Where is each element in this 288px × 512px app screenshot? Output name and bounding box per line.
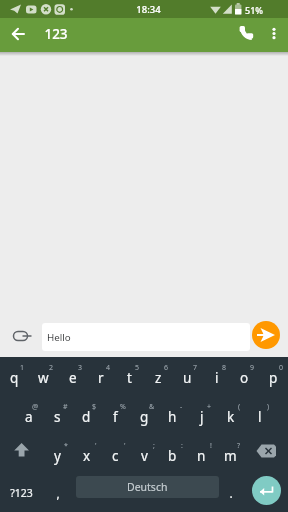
staticText: + (207, 402, 212, 412)
staticText: h (168, 408, 177, 426)
button[interactable]: o (230, 357, 259, 396)
button[interactable]: g (130, 396, 159, 435)
button[interactable]: h (158, 396, 187, 435)
staticText: u (183, 369, 192, 387)
staticText: 51% (245, 4, 263, 16)
staticText: 3 (78, 363, 83, 373)
staticText: @ (32, 402, 39, 412)
button[interactable]: Deutsch (76, 476, 219, 498)
staticText: Hello (47, 331, 71, 344)
button[interactable]: b (158, 435, 187, 474)
staticText: ) (267, 402, 270, 412)
button[interactable]: k (216, 396, 245, 435)
button[interactable] (6, 322, 36, 350)
staticText: d (82, 408, 91, 426)
staticText: z (155, 369, 162, 387)
staticText: v (141, 447, 148, 465)
staticText: 2 (49, 363, 54, 373)
staticText: o (240, 369, 249, 387)
button[interactable]: i (202, 357, 231, 396)
staticText: # (63, 402, 68, 412)
button[interactable]: e (58, 357, 87, 396)
button[interactable]: q (0, 357, 29, 396)
button[interactable]: . (216, 473, 245, 512)
staticText: q (10, 369, 19, 387)
staticText: k (227, 408, 235, 426)
staticText: ( (238, 402, 241, 412)
button[interactable] (252, 321, 280, 349)
staticText: $ (92, 402, 97, 412)
staticText: a (25, 408, 33, 426)
staticText: 123 (44, 25, 68, 43)
staticText: * (64, 441, 68, 451)
staticText: ' (95, 441, 97, 451)
button[interactable]: r (86, 357, 115, 396)
staticText: - (180, 402, 183, 412)
button[interactable]: v (130, 435, 159, 474)
staticText: e (69, 369, 77, 387)
staticText: ? (237, 441, 241, 451)
staticText: x (83, 447, 91, 465)
button[interactable]: z (144, 357, 173, 396)
staticText: 9 (250, 363, 255, 373)
button[interactable]: p (259, 357, 288, 396)
button[interactable]: ?123 (0, 473, 43, 512)
button[interactable]: d (72, 396, 101, 435)
staticText: ?123 (10, 486, 33, 500)
button[interactable]: , (43, 473, 72, 512)
button[interactable]: n (187, 435, 216, 474)
staticText: j (200, 408, 204, 426)
button[interactable]: u (173, 357, 202, 396)
staticText: f (113, 408, 118, 426)
button[interactable]: y (43, 435, 72, 474)
staticText: n (197, 447, 206, 465)
button[interactable] (245, 435, 288, 474)
staticText: 4 (106, 363, 111, 373)
staticText: % (120, 402, 126, 412)
button[interactable]: a (14, 396, 43, 435)
staticText: y (54, 447, 61, 465)
button[interactable] (252, 476, 281, 505)
staticText: b (168, 447, 177, 465)
staticText: 1 (20, 363, 25, 373)
staticText: . (229, 485, 233, 501)
staticText: ' (124, 441, 126, 451)
button[interactable]: x (72, 435, 101, 474)
staticText: w (38, 369, 49, 387)
staticText: Deutsch (127, 480, 168, 494)
button[interactable] (0, 435, 43, 474)
button[interactable]: f (101, 396, 130, 435)
staticText: p (269, 369, 278, 387)
staticText: r (98, 369, 104, 387)
button[interactable]: Hello (42, 323, 250, 351)
button[interactable]: s (43, 396, 72, 435)
button[interactable]: m (216, 435, 245, 474)
staticText: c (112, 447, 119, 465)
staticText: : (181, 441, 183, 451)
button[interactable]: c (101, 435, 130, 474)
staticText: 5 (135, 363, 140, 373)
staticText: l (258, 408, 262, 426)
button[interactable]: j (187, 396, 216, 435)
staticText: , (56, 485, 60, 501)
button[interactable] (262, 18, 288, 52)
button[interactable] (0, 18, 36, 52)
staticText: t (127, 369, 132, 387)
staticText: i (215, 369, 219, 387)
button[interactable]: t (115, 357, 144, 396)
staticText: g (140, 408, 149, 426)
staticText: 8 (222, 363, 227, 373)
staticText: ! (210, 441, 212, 451)
staticText: ; (153, 441, 155, 451)
button[interactable] (230, 18, 264, 52)
staticText: m (224, 447, 237, 465)
staticText: 7 (193, 363, 198, 373)
staticText: 18:34 (136, 3, 161, 16)
staticText: 0 (279, 363, 284, 373)
staticText: 6 (164, 363, 169, 373)
staticText: s (54, 408, 61, 426)
button[interactable]: w (29, 357, 58, 396)
staticText: & (149, 402, 155, 412)
button[interactable]: l (245, 396, 274, 435)
